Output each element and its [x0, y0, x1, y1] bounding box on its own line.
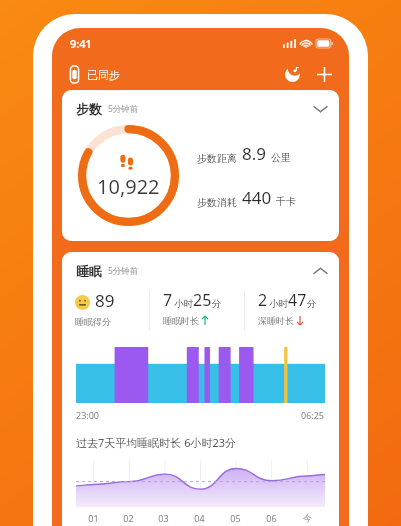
- button[interactable]: 2: [245, 289, 339, 333]
- staticText: 9:41: [70, 36, 92, 51]
- staticText: 5分钟前: [108, 103, 139, 115]
- button[interactable]: Sleep music: [279, 61, 305, 87]
- staticText: 23:00: [76, 409, 100, 421]
- button[interactable]: 89: [62, 289, 149, 333]
- staticText: 分: [212, 298, 222, 310]
- staticText: 06: [266, 512, 277, 524]
- staticText: 05: [230, 512, 241, 524]
- staticText: 25: [193, 289, 212, 311]
- staticText: 01: [88, 512, 99, 524]
- button[interactable]: Add: [311, 61, 337, 87]
- staticText: 440: [242, 186, 272, 209]
- staticText: 步数距离: [197, 152, 237, 165]
- button[interactable]: 睡眠: [62, 252, 339, 526]
- staticText: 分: [307, 298, 317, 310]
- button[interactable]: 步数: [62, 90, 339, 119]
- staticText: 已同步: [87, 68, 120, 82]
- staticText: 02: [123, 512, 134, 524]
- staticText: 睡眠时长: [163, 315, 199, 326]
- staticText: 睡眠: [76, 263, 102, 279]
- button[interactable]: 已同步: [66, 63, 123, 86]
- staticText: 深睡时长: [258, 315, 294, 326]
- button[interactable]: 7: [150, 289, 244, 333]
- staticText: 睡眠得分: [75, 316, 111, 327]
- staticText: 89: [95, 289, 115, 312]
- staticText: 过去7天平均睡眠时长 6小时23分: [76, 435, 237, 450]
- staticText: 04: [194, 512, 205, 524]
- staticText: 公里: [271, 151, 291, 164]
- staticText: 7: [163, 289, 173, 311]
- staticText: 03: [158, 512, 169, 524]
- button[interactable]: 睡眠: [62, 252, 339, 281]
- staticText: 步数消耗: [197, 196, 237, 209]
- staticText: 5分钟前: [108, 265, 139, 277]
- staticText: 今: [303, 512, 312, 523]
- staticText: 47: [288, 289, 307, 311]
- staticText: 06:25: [301, 409, 325, 421]
- staticText: 8.9: [242, 142, 267, 165]
- staticText: 2: [258, 289, 268, 311]
- staticText: 10,922: [97, 173, 160, 200]
- button[interactable]: 步数: [62, 90, 339, 241]
- staticText: 步数: [76, 101, 102, 117]
- staticText: 小时: [269, 298, 288, 310]
- staticText: 千卡: [276, 195, 296, 208]
- staticText: 小时: [174, 298, 193, 310]
